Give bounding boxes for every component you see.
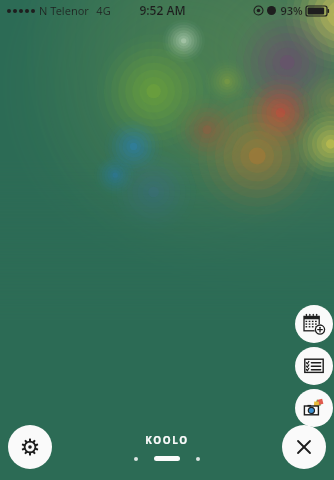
button[interactable]: Settings (8, 425, 52, 469)
button[interactable]: KOOLO (134, 433, 200, 461)
button[interactable]: Photos (295, 389, 333, 427)
staticText: 4G (96, 3, 111, 18)
button[interactable]: Close (282, 425, 326, 469)
button[interactable]: Checklist (295, 347, 333, 385)
button[interactable]: Add calendar event (295, 305, 333, 343)
staticText: KOOLO (145, 433, 189, 447)
staticText: 9:52 AM (139, 2, 186, 18)
staticText: 93% (280, 3, 303, 18)
staticText: N Telenor (39, 3, 89, 18)
